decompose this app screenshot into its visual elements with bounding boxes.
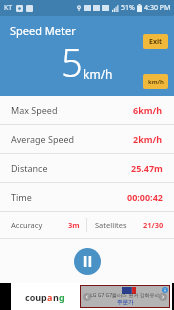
staticText: 6km/h <box>133 104 163 116</box>
staticText: 51% <box>121 3 135 13</box>
staticText: Speed Meter <box>10 23 76 38</box>
staticText: g <box>59 291 65 303</box>
staticText: a <box>47 291 53 303</box>
staticText: km/h <box>148 78 164 86</box>
button[interactable]: Exit <box>143 34 168 49</box>
staticText: 25.47m <box>131 162 163 174</box>
staticText: 2km/h <box>133 133 163 145</box>
button[interactable]: Advertisement <box>0 283 174 310</box>
button[interactable]: Time <box>0 183 174 211</box>
staticText: LG G7 G7플러스 썬커 강화유리 <box>90 292 160 299</box>
staticText: Distance <box>11 162 48 174</box>
staticText: n <box>53 291 59 303</box>
button[interactable]: Average Speed <box>0 125 174 153</box>
staticText: 00:00:42 <box>127 191 163 203</box>
staticText: 4:30 PM <box>144 3 171 13</box>
button[interactable]: Distance <box>0 154 174 182</box>
staticText: coup <box>25 291 47 303</box>
staticText: Satellites <box>95 220 127 230</box>
button[interactable]: Pause <box>74 248 101 275</box>
staticText: Accuracy <box>11 220 43 230</box>
button[interactable]: Accuracy <box>0 212 86 238</box>
button[interactable]: Satellites <box>87 212 174 238</box>
staticText: Exit <box>149 37 163 47</box>
button[interactable]: Max Speed <box>0 96 174 124</box>
staticText: Average Speed <box>11 133 75 145</box>
staticText: km/h <box>83 66 113 82</box>
staticText: Max Speed <box>11 104 58 116</box>
staticText: 3m <box>68 220 80 230</box>
staticText: 5 <box>61 36 83 88</box>
staticText: KT <box>4 3 13 13</box>
button[interactable]: km/h <box>143 74 168 89</box>
staticText: 주문가 <box>117 299 134 306</box>
staticText: 21/30 <box>143 220 164 230</box>
staticText: Time <box>11 191 32 203</box>
